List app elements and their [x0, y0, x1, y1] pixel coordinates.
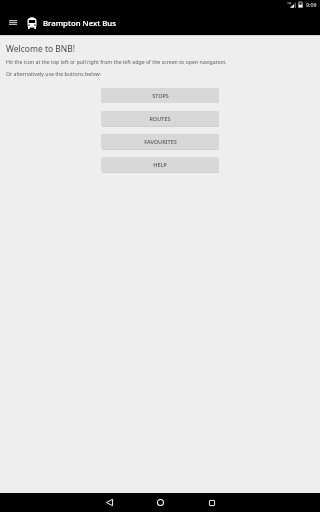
staticText: HELP [153, 161, 167, 168]
staticText: Brampton Next Bus [43, 18, 116, 29]
button[interactable]: Open navigation drawer [2, 12, 24, 35]
staticText: FAVOURITES [144, 138, 177, 145]
button[interactable]: FAVOURITES [101, 134, 219, 149]
staticText: Hit the icon at the top left or pull rig… [6, 58, 227, 65]
button[interactable]: ROUTES [101, 111, 219, 126]
staticText: Or alternatively use the buttons below: [6, 70, 102, 77]
button[interactable]: Recent apps [196, 493, 227, 512]
staticText: ROUTES [149, 115, 171, 122]
button[interactable]: HELP [101, 157, 219, 172]
staticText: STOPS [152, 92, 169, 99]
staticText: 9:09 [306, 1, 317, 8]
button[interactable]: Home [145, 493, 176, 512]
button[interactable]: STOPS [101, 88, 219, 103]
staticText: Welcome to BNB! [6, 43, 76, 55]
button[interactable]: Back [94, 493, 125, 512]
